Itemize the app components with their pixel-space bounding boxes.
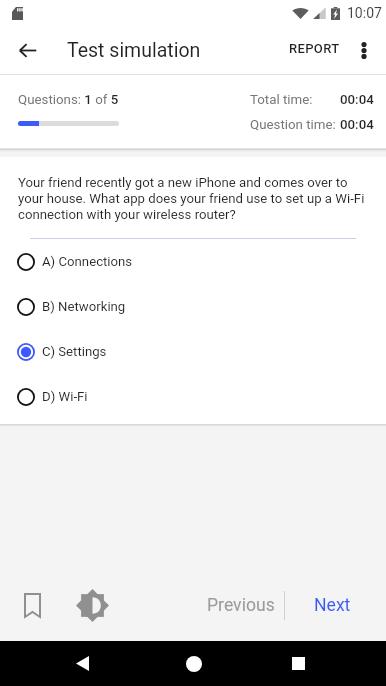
button[interactable]: Next bbox=[285, 583, 364, 628]
staticText: Previous bbox=[207, 595, 275, 616]
staticText: Test simulation bbox=[67, 39, 201, 62]
button[interactable]: D) Wi-Fi bbox=[0, 374, 386, 419]
staticText: B) Networking bbox=[42, 299, 126, 314]
staticText: REPORT bbox=[289, 41, 340, 56]
button[interactable]: C) Settings bbox=[0, 329, 386, 374]
staticText: Question time: bbox=[250, 117, 336, 133]
button[interactable]: Brightness bbox=[68, 581, 116, 629]
button[interactable]: More options bbox=[344, 30, 384, 70]
button[interactable]: Back bbox=[62, 643, 103, 684]
button[interactable]: A) Connections bbox=[0, 239, 386, 284]
button[interactable]: Back bbox=[4, 26, 52, 74]
staticText: Next bbox=[314, 595, 351, 616]
staticText: C) Settings bbox=[42, 344, 107, 359]
button[interactable]: B) Networking bbox=[0, 284, 386, 329]
staticText: 10:07 bbox=[347, 5, 382, 21]
staticText: 00:04 bbox=[340, 117, 374, 133]
staticText: 00:04 bbox=[340, 92, 374, 108]
staticText: Your friend recently got a new iPhone an… bbox=[18, 175, 372, 223]
button[interactable]: Previous bbox=[194, 583, 284, 628]
button[interactable]: Bookmark bbox=[8, 581, 56, 629]
staticText: Questions: 1 of 5 bbox=[18, 92, 119, 108]
button[interactable]: Recents bbox=[278, 643, 319, 684]
staticText: A) Connections bbox=[42, 254, 133, 269]
button[interactable]: Home bbox=[173, 643, 214, 684]
button[interactable]: REPORT bbox=[279, 31, 344, 70]
staticText: Total time: bbox=[250, 92, 313, 108]
staticText: D) Wi-Fi bbox=[42, 389, 88, 404]
